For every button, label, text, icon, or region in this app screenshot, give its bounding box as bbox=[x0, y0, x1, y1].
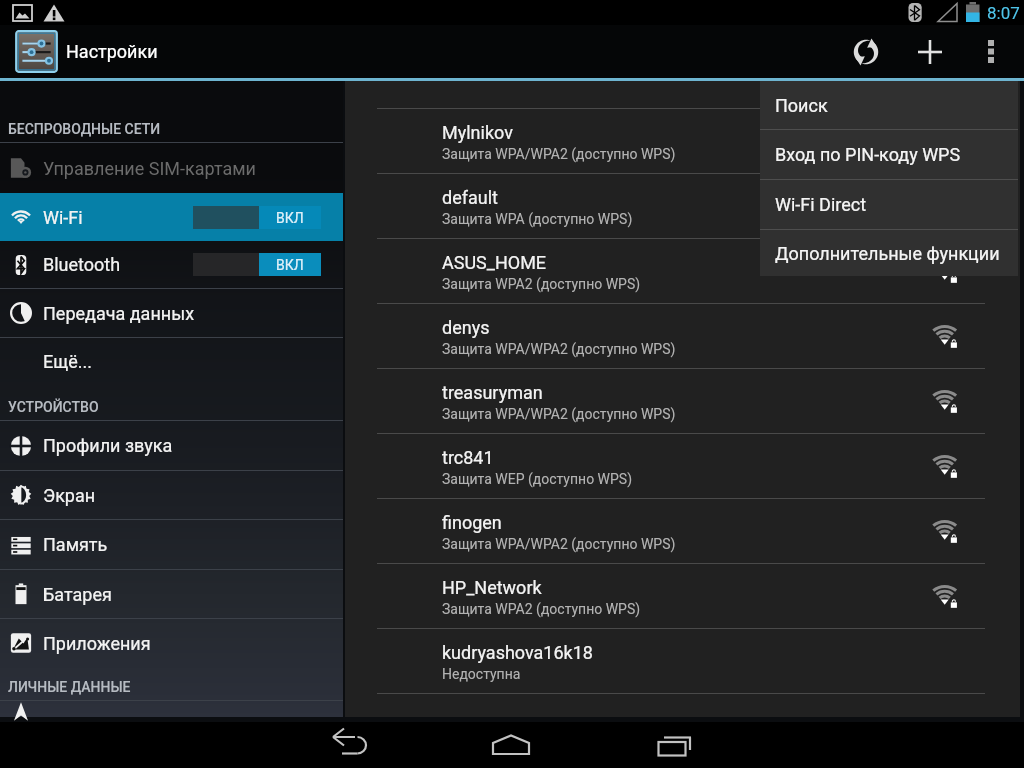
button[interactable]: default bbox=[345, 174, 1020, 238]
staticText: HP_Network bbox=[442, 577, 542, 598]
button[interactable]: Экран bbox=[0, 471, 343, 519]
button[interactable]: Дополнительные функции bbox=[760, 230, 1018, 276]
button[interactable]: Главный экран bbox=[462, 722, 562, 768]
button[interactable]: Wi-Fi bbox=[0, 193, 343, 241]
button[interactable] bbox=[0, 701, 343, 717]
staticText: Bluetooth bbox=[43, 254, 121, 275]
staticText: Wi-Fi bbox=[43, 207, 83, 228]
staticText: Защита WPA/WPA2 (доступно WPS) bbox=[442, 406, 676, 422]
staticText: Защита WEP (доступно WPS) bbox=[442, 471, 633, 487]
button[interactable]: treasuryman bbox=[345, 369, 1020, 433]
staticText: Управление SIM-картами bbox=[43, 158, 256, 179]
staticText: Поиск bbox=[775, 95, 828, 116]
staticText: Защита WPA2 (доступно WPS) bbox=[442, 276, 641, 292]
button[interactable]: Добавить сеть bbox=[902, 25, 958, 78]
button[interactable]: Управление SIM-картами bbox=[0, 143, 343, 193]
button[interactable]: Память bbox=[0, 520, 343, 569]
staticText: Передача данных bbox=[43, 303, 195, 324]
button[interactable]: Вход по PIN-коду WPS bbox=[760, 130, 1018, 179]
staticText: УСТРОЙСТВО bbox=[8, 399, 99, 415]
staticText: default bbox=[442, 187, 498, 208]
staticText: kudryashova16k18 bbox=[442, 642, 593, 663]
button[interactable]: Bluetooth bbox=[0, 241, 343, 288]
button[interactable]: Батарея bbox=[0, 570, 343, 618]
staticText: Экран bbox=[43, 485, 96, 506]
staticText: Недоступна bbox=[442, 666, 521, 682]
button[interactable]: Обновить bbox=[838, 25, 894, 78]
staticText: БЕСПРОВОДНЫЕ СЕТИ bbox=[8, 121, 161, 137]
staticText: Защита WPA/WPA2 (доступно WPS) bbox=[442, 341, 676, 357]
staticText: Батарея bbox=[43, 584, 112, 605]
button[interactable]: Приложения bbox=[0, 619, 343, 667]
button[interactable]: Недавние приложения bbox=[624, 722, 724, 768]
staticText: finogen bbox=[442, 512, 502, 533]
staticText: Защита WPA (доступно WPS) bbox=[442, 211, 633, 227]
staticText: treasuryman bbox=[442, 382, 543, 403]
button[interactable]: Назад bbox=[300, 722, 400, 768]
staticText: Дополнительные функции bbox=[775, 243, 1000, 264]
button[interactable]: Профили звука bbox=[0, 421, 343, 470]
button[interactable]: Передача данных bbox=[0, 289, 343, 337]
button[interactable]: Ещё bbox=[963, 25, 1019, 78]
staticText: ВКЛ bbox=[276, 257, 304, 273]
staticText: Профили звука bbox=[43, 435, 173, 456]
staticText: Защита WPA/WPA2 (доступно WPS) bbox=[442, 536, 676, 552]
button[interactable]: trc841 bbox=[345, 434, 1020, 498]
staticText: Приложения bbox=[43, 633, 151, 654]
staticText: denys bbox=[442, 317, 490, 338]
button[interactable]: Настройки bbox=[15, 25, 158, 78]
staticText: ВКЛ bbox=[276, 210, 304, 226]
staticText: Mylnikov bbox=[442, 122, 513, 143]
staticText: ЛИЧНЫЕ ДАННЫЕ bbox=[8, 679, 131, 695]
staticText: Настройки bbox=[66, 41, 158, 62]
staticText: Вход по PIN-коду WPS bbox=[775, 144, 961, 165]
staticText: 8:07 bbox=[987, 3, 1020, 23]
button[interactable]: HP_Network bbox=[345, 564, 1020, 628]
button[interactable]: Wi-Fi Direct bbox=[760, 180, 1018, 229]
button[interactable]: Mylnikov bbox=[345, 109, 1020, 173]
button[interactable]: Поиск bbox=[760, 81, 1018, 129]
button[interactable]: kudryashova16k18 bbox=[345, 629, 1020, 693]
button[interactable]: ВКЛ bbox=[193, 206, 321, 229]
staticText: Wi-Fi Direct bbox=[775, 194, 867, 215]
staticText: Ещё... bbox=[43, 351, 93, 372]
staticText: ASUS_HOME bbox=[442, 252, 547, 273]
button[interactable]: finogen bbox=[345, 499, 1020, 563]
button[interactable]: ASUS_HOME bbox=[345, 239, 1020, 303]
staticText: Память bbox=[43, 534, 108, 555]
staticText: trc841 bbox=[442, 447, 494, 468]
button[interactable]: denys bbox=[345, 304, 1020, 368]
staticText: Защита WPA/WPA2 (доступно WPS) bbox=[442, 146, 676, 162]
staticText: Защита WPA2 (доступно WPS) bbox=[442, 601, 641, 617]
button[interactable]: Ещё... bbox=[0, 338, 343, 385]
button[interactable]: ВКЛ bbox=[193, 253, 321, 276]
